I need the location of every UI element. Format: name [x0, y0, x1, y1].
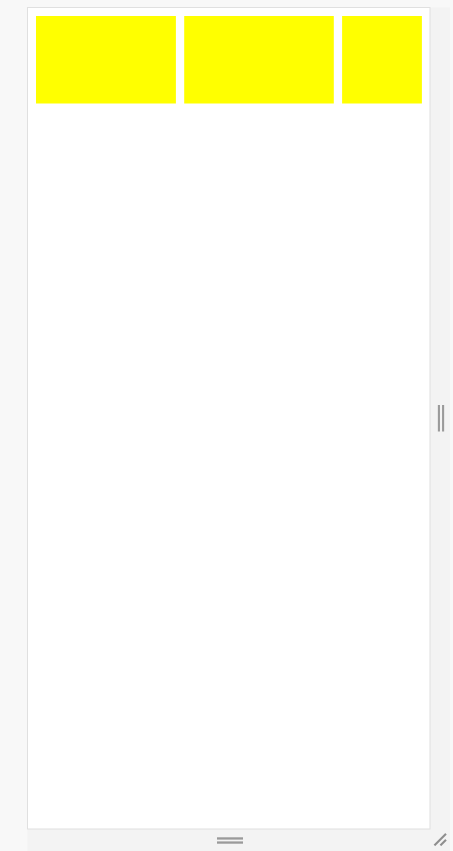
button[interactable]: Resize — [430, 830, 449, 851]
button[interactable]: Resize height — [27, 830, 432, 851]
button[interactable]: Resize width — [432, 7, 450, 829]
